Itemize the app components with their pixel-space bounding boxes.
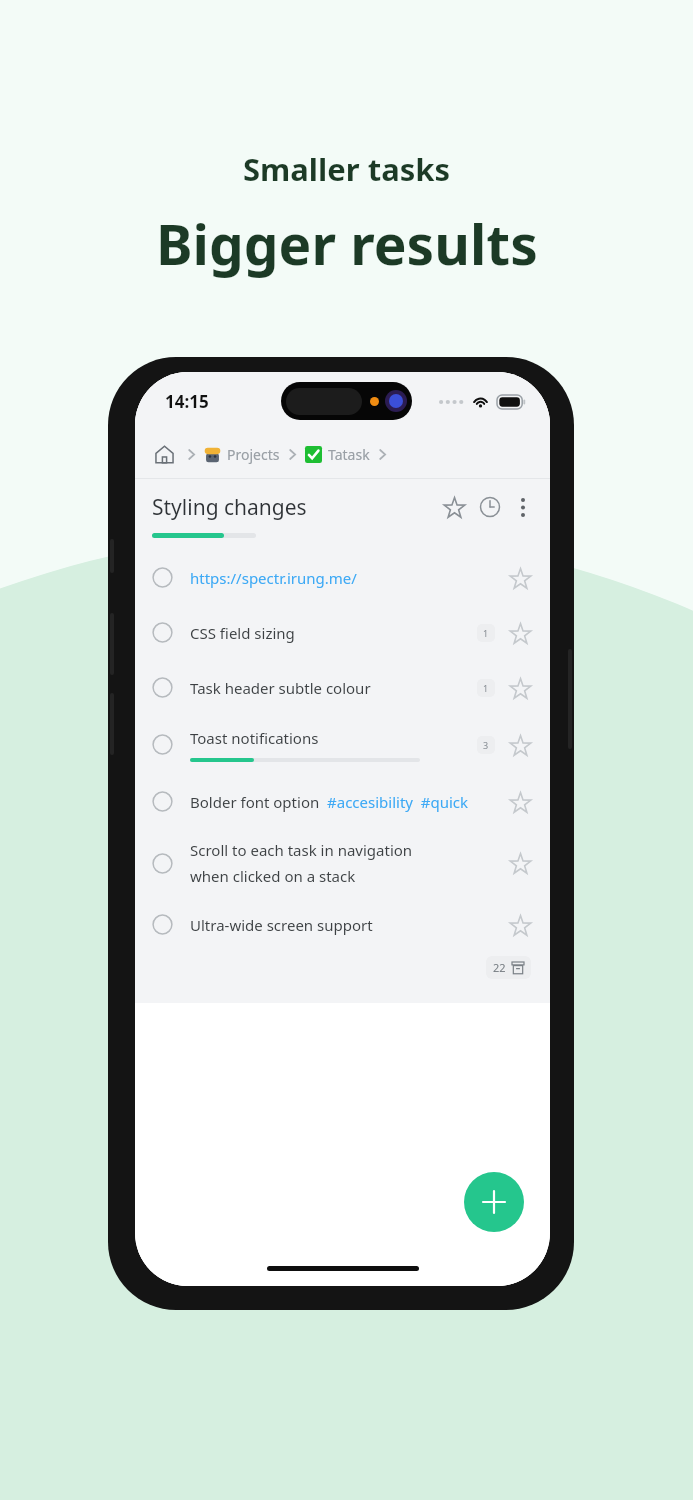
button[interactable]: History [472,489,508,525]
staticText: Scroll to each task in navigation [190,840,413,860]
button[interactable]: CSS field sizing [135,605,550,660]
button[interactable]: Add task [464,1172,524,1232]
button[interactable]: Star task [504,847,536,879]
staticText: Bolder font option #accesibility #quick [190,792,469,812]
staticText: CSS field sizing [190,623,295,643]
staticText: 22 [493,960,506,975]
staticText: 1 [483,627,489,639]
button[interactable]: More options [508,492,538,522]
staticText: https://spectr.irung.me/ [190,568,357,588]
button[interactable]: Star task [504,909,536,941]
button[interactable]: Task header subtle colour [135,660,550,715]
button[interactable]: Star task [504,562,536,594]
staticText: 3 [483,739,489,751]
staticText: 14:15 [165,390,209,413]
button[interactable]: Projects [227,445,280,464]
staticText: Ultra-wide screen support [190,915,373,935]
button[interactable]: https://spectr.irung.me/ [135,550,550,605]
staticText: Bigger results [156,206,538,281]
button[interactable]: Tatask [328,445,370,464]
staticText: Task header subtle colour [190,678,371,698]
button[interactable]: Toast notifications [135,715,550,774]
button[interactable]: Home [149,439,179,469]
button[interactable]: Star task [504,617,536,649]
button[interactable]: Scroll to each task in navigation [135,829,550,897]
button[interactable]: Star task [504,729,536,761]
staticText: 1 [483,682,489,694]
button[interactable]: Favourite [436,489,472,525]
button[interactable]: Star task [504,786,536,818]
button[interactable]: 22 [486,956,531,979]
staticText: Smaller tasks [243,148,451,190]
button[interactable]: Bolder font option #accesibility #quick [135,774,550,829]
button[interactable]: Ultra-wide screen support [135,897,550,952]
staticText: when clicked on a stack [190,866,356,886]
staticText: Toast notifications [190,728,319,748]
staticText: Styling changes [152,493,436,522]
button[interactable]: Star task [504,672,536,704]
